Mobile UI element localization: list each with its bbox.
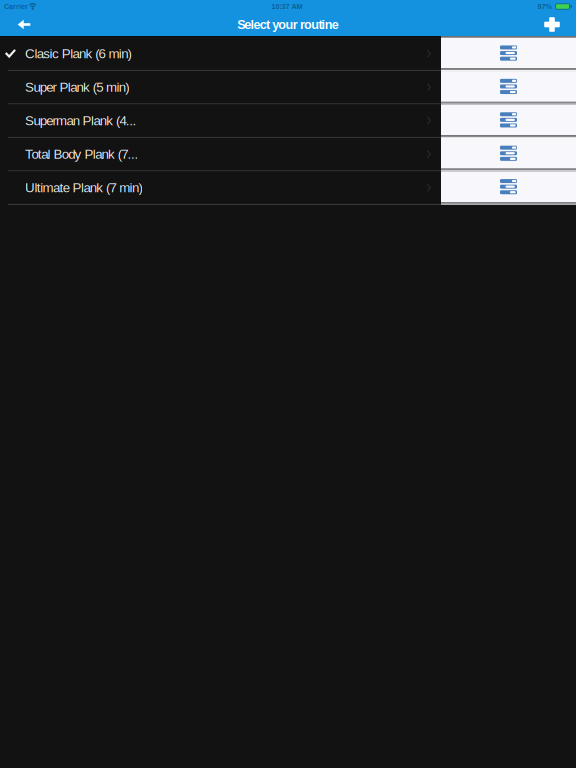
staticText: Clasic Plank (6 min): [25, 46, 132, 61]
staticText: Ultimate Plank (7 min): [25, 180, 142, 195]
button[interactable]: Adjust routine: [441, 171, 576, 202]
button[interactable]: Add routine: [532, 13, 572, 36]
staticText: 10:37 AM: [271, 2, 302, 11]
button[interactable]: Clasic Plank (6 min): [0, 37, 441, 70]
staticText: Super Plank (5 min): [25, 80, 129, 95]
button[interactable]: Ultimate Plank (7 min): [0, 171, 441, 204]
button[interactable]: Total Body Plank (7...: [0, 138, 441, 170]
staticText: 97%: [538, 2, 553, 11]
button[interactable]: Adjust routine: [441, 71, 576, 102]
staticText: Carrier: [4, 2, 28, 11]
button[interactable]: Superman Plank (4...: [0, 104, 441, 137]
button[interactable]: Super Plank (5 min): [0, 71, 441, 103]
staticText: Select your routine: [237, 17, 339, 32]
staticText: Superman Plank (4...: [25, 113, 137, 128]
button[interactable]: Adjust routine: [441, 138, 576, 169]
button[interactable]: Adjust routine: [441, 38, 576, 68]
button[interactable]: Adjust routine: [441, 104, 576, 135]
staticText: Total Body Plank (7...: [25, 147, 138, 162]
button[interactable]: Back: [4, 13, 44, 36]
